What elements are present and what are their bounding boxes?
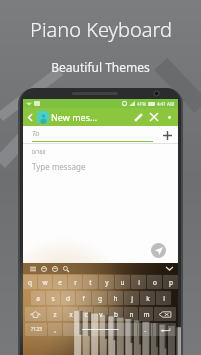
staticText: x [69,310,73,319]
button[interactable]: s [46,291,60,305]
button[interactable]: Backspace [154,307,176,321]
staticText: ?123 [31,326,42,333]
button[interactable]: Shift [25,307,46,321]
staticText: i [138,278,140,287]
button[interactable]: Contact [37,111,49,123]
staticText: h [113,294,118,303]
staticText: n [129,310,134,319]
staticText: v [99,310,103,319]
staticText: r [74,278,77,287]
button[interactable]: t [83,275,98,289]
button[interactable]: p [163,275,178,289]
staticText: . [144,325,146,334]
staticText: o [153,278,157,287]
staticText: e [58,278,62,287]
staticText: a [36,294,40,303]
staticText: c [84,310,88,319]
button[interactable]: y [99,275,114,289]
button[interactable]: Back [23,110,37,124]
button[interactable]: c [79,307,93,321]
button[interactable]: x [63,307,78,321]
button[interactable]: Close [146,109,162,125]
staticText: , [54,325,56,334]
button[interactable]: g [92,291,107,305]
button[interactable]: j [124,291,139,305]
button[interactable]: q [23,275,37,289]
button[interactable]: Send [151,243,166,258]
staticText: 0/160 [32,149,46,156]
staticText: To [32,128,40,138]
staticText: w [42,278,48,287]
staticText: b [114,310,118,319]
staticText: s [51,294,55,303]
button[interactable]: Enter [153,323,176,336]
button[interactable]: Search [61,264,70,273]
button[interactable]: f [76,291,91,305]
staticText: m [143,310,150,319]
button[interactable]: k [140,291,155,305]
button[interactable]: n [124,307,138,321]
button[interactable]: , [48,323,62,336]
staticText: f [82,294,85,303]
button[interactable]: l [156,291,171,305]
staticText: q [28,278,32,287]
button[interactable]: o [147,275,162,289]
staticText: New mes… [51,111,98,123]
button[interactable]: u [115,275,130,289]
button[interactable]: b [109,307,123,321]
button[interactable]: h [108,291,123,305]
staticText: y [105,278,109,287]
button[interactable]: e [53,275,67,289]
button[interactable]: . [138,323,152,336]
button[interactable]: Stickers [50,264,59,273]
staticText: k [146,294,150,303]
button[interactable]: Attach [130,109,146,125]
staticText: p [169,278,173,287]
button[interactable]: d [61,291,75,305]
button[interactable]: Add recipient [159,127,175,143]
staticText: l [163,294,165,303]
staticText: 4:41 AM [157,101,175,107]
button[interactable]: w [38,275,52,289]
button[interactable]: i [131,275,146,289]
staticText: t [89,278,92,287]
staticText: j [131,294,133,303]
button[interactable]: More options [162,110,176,124]
button[interactable]: m [139,307,153,321]
staticText: z [53,310,57,319]
button[interactable]: Space [63,323,137,336]
button[interactable]: r [68,275,82,289]
button[interactable]: Hide keyboard [164,263,175,274]
staticText: Piano Keyboard [30,16,172,43]
staticText: Beautiful Themes [51,59,150,75]
button[interactable]: Emoji [39,264,48,273]
staticText: u [120,278,125,287]
button[interactable]: ?123 [25,323,47,336]
button[interactable]: v [94,307,108,321]
staticText: g [98,294,102,303]
button[interactable]: Type message [32,161,86,172]
staticText: 41% [137,101,146,107]
button[interactable]: Menu [28,264,37,273]
button[interactable]: z [47,307,62,321]
staticText: d [66,294,70,303]
button[interactable]: a [31,291,45,305]
